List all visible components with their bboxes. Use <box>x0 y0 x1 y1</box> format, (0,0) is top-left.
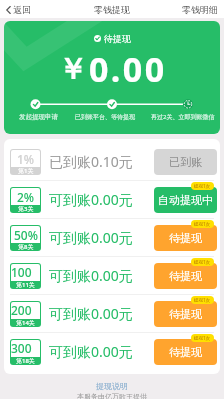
button[interactable]: 50% <box>4 219 220 256</box>
staticText: 提现1次 <box>194 259 211 265</box>
staticText: 已到账 <box>169 155 202 169</box>
button[interactable]: 2% <box>4 181 220 218</box>
button[interactable]: 待提现 <box>154 339 217 365</box>
staticText: 提现1次 <box>194 183 211 189</box>
staticText: 第1关 <box>18 167 34 175</box>
staticText: 第18关 <box>16 357 35 365</box>
button[interactable]: 待提现 <box>154 263 217 289</box>
button[interactable]: 300% <box>4 333 220 370</box>
staticText: 待提现 <box>169 307 202 321</box>
button[interactable]: 自动提现中 <box>154 187 217 213</box>
staticText: 提现1次 <box>194 221 211 227</box>
staticText: 待提现 <box>169 231 202 245</box>
staticText: 提现1次 <box>194 297 211 303</box>
button[interactable]: 返回 <box>0 2 39 17</box>
button[interactable]: 1% <box>4 143 220 180</box>
button[interactable]: 待提现 <box>154 225 217 251</box>
staticText: 1% <box>17 151 35 167</box>
staticText: 可到账0.00元 <box>49 266 133 285</box>
staticText: 可到账0.00元 <box>49 342 133 361</box>
staticText: 2% <box>17 189 35 205</box>
button[interactable]: 200% <box>4 295 220 332</box>
button[interactable]: 待提现 <box>154 301 217 327</box>
staticText: 0.00 <box>89 46 167 92</box>
staticText: 返回 <box>13 4 31 15</box>
staticText: 第8关 <box>18 243 34 251</box>
staticText: 已到账0.10元 <box>49 152 133 171</box>
staticText: 第3关 <box>18 205 34 213</box>
staticText: ￥ <box>58 51 87 88</box>
staticText: 第11关 <box>16 281 35 289</box>
staticText: 本服务由亿万歌王提供 <box>77 392 147 399</box>
staticText: 提现1次 <box>194 335 211 341</box>
button[interactable]: 100% <box>4 257 220 294</box>
staticText: 待提现 <box>104 33 131 44</box>
staticText: 100% <box>11 264 40 281</box>
staticText: 300% <box>11 340 40 357</box>
staticText: 零钱提现 <box>94 4 130 15</box>
staticText: 可到账0.00元 <box>49 304 133 323</box>
staticText: 提现说明 <box>96 381 128 391</box>
button[interactable]: 已到账 <box>154 149 217 175</box>
staticText: 再过2关、立即到账微信 <box>151 113 215 121</box>
staticText: 第14关 <box>16 319 35 327</box>
staticText: 待提现 <box>169 345 202 359</box>
staticText: 自动提现中 <box>158 193 213 207</box>
staticText: 发起提现申请 <box>19 113 58 121</box>
staticText: 可到账0.00元 <box>49 190 133 209</box>
staticText: 200% <box>11 302 40 319</box>
staticText: 可到账0.00元 <box>49 228 133 247</box>
staticText: 待提现 <box>169 269 202 283</box>
staticText: 50% <box>14 227 38 243</box>
button[interactable]: 零钱明细 <box>176 2 224 17</box>
staticText: 已到账平台、等待提现 <box>75 113 135 121</box>
